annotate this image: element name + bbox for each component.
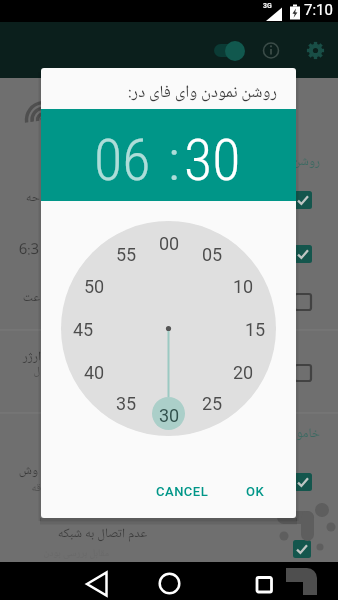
button[interactable] [257,36,285,64]
staticText: 50 [84,276,105,297]
button[interactable]: 10 [227,274,259,298]
staticText: 3G [263,2,272,10]
button[interactable] [0,22,338,78]
staticText: 00 [159,233,180,254]
button[interactable]: 20 [227,360,259,384]
button[interactable]: 15 [239,317,271,341]
staticText: حه [25,189,40,207]
staticText: 55 [116,244,137,265]
button[interactable] [210,38,250,64]
button[interactable]: 30 [153,403,185,427]
button[interactable] [294,364,312,382]
button[interactable]: 30 [184,126,241,194]
button[interactable] [149,564,189,598]
staticText: 25 [202,393,223,414]
staticText: 6:3 [18,240,39,260]
button[interactable] [244,564,284,598]
button[interactable] [294,473,312,491]
staticText: خاموش نمودن وای فای در: [196,425,320,443]
button[interactable]: 55 [110,242,142,266]
button[interactable] [294,191,312,209]
staticText: روشن نمودن وای فای در: [128,81,277,104]
staticText: 7:10 [304,1,333,19]
staticText: عدم اتصال به شبكه [57,525,147,543]
staticText: 05 [202,244,223,265]
staticText: عت [22,289,40,307]
button[interactable] [294,293,312,311]
button[interactable]: 05 [196,242,228,266]
button[interactable] [294,245,312,263]
staticText: ارژر [22,348,41,366]
button[interactable] [77,564,117,598]
button[interactable]: CANCEL [156,484,209,499]
staticText: ل [33,364,40,379]
staticText: 15 [245,319,266,340]
staticText: : [168,126,180,194]
button[interactable]: 06 [94,126,151,194]
staticText: روشن نمودن وای فای در: [206,153,320,171]
staticText: CANCEL [156,484,209,499]
staticText: وش [18,462,38,480]
button[interactable]: OK [246,484,264,499]
button[interactable]: 25 [196,391,228,415]
button[interactable]: 35 [110,391,142,415]
button[interactable]: 00 [153,231,185,255]
staticText: 35 [116,393,137,414]
button[interactable] [293,540,311,558]
button[interactable]: 45 [67,317,99,341]
button[interactable]: 50 [78,274,110,298]
button[interactable] [301,36,329,64]
staticText: OK [246,484,264,499]
staticText: 30 [159,405,180,426]
staticText: 40 [84,362,105,383]
staticText: 20 [233,362,254,383]
button[interactable]: 40 [78,360,110,384]
staticText: قه [31,480,41,495]
staticText: 10 [233,276,254,297]
staticText: 45 [73,319,94,340]
